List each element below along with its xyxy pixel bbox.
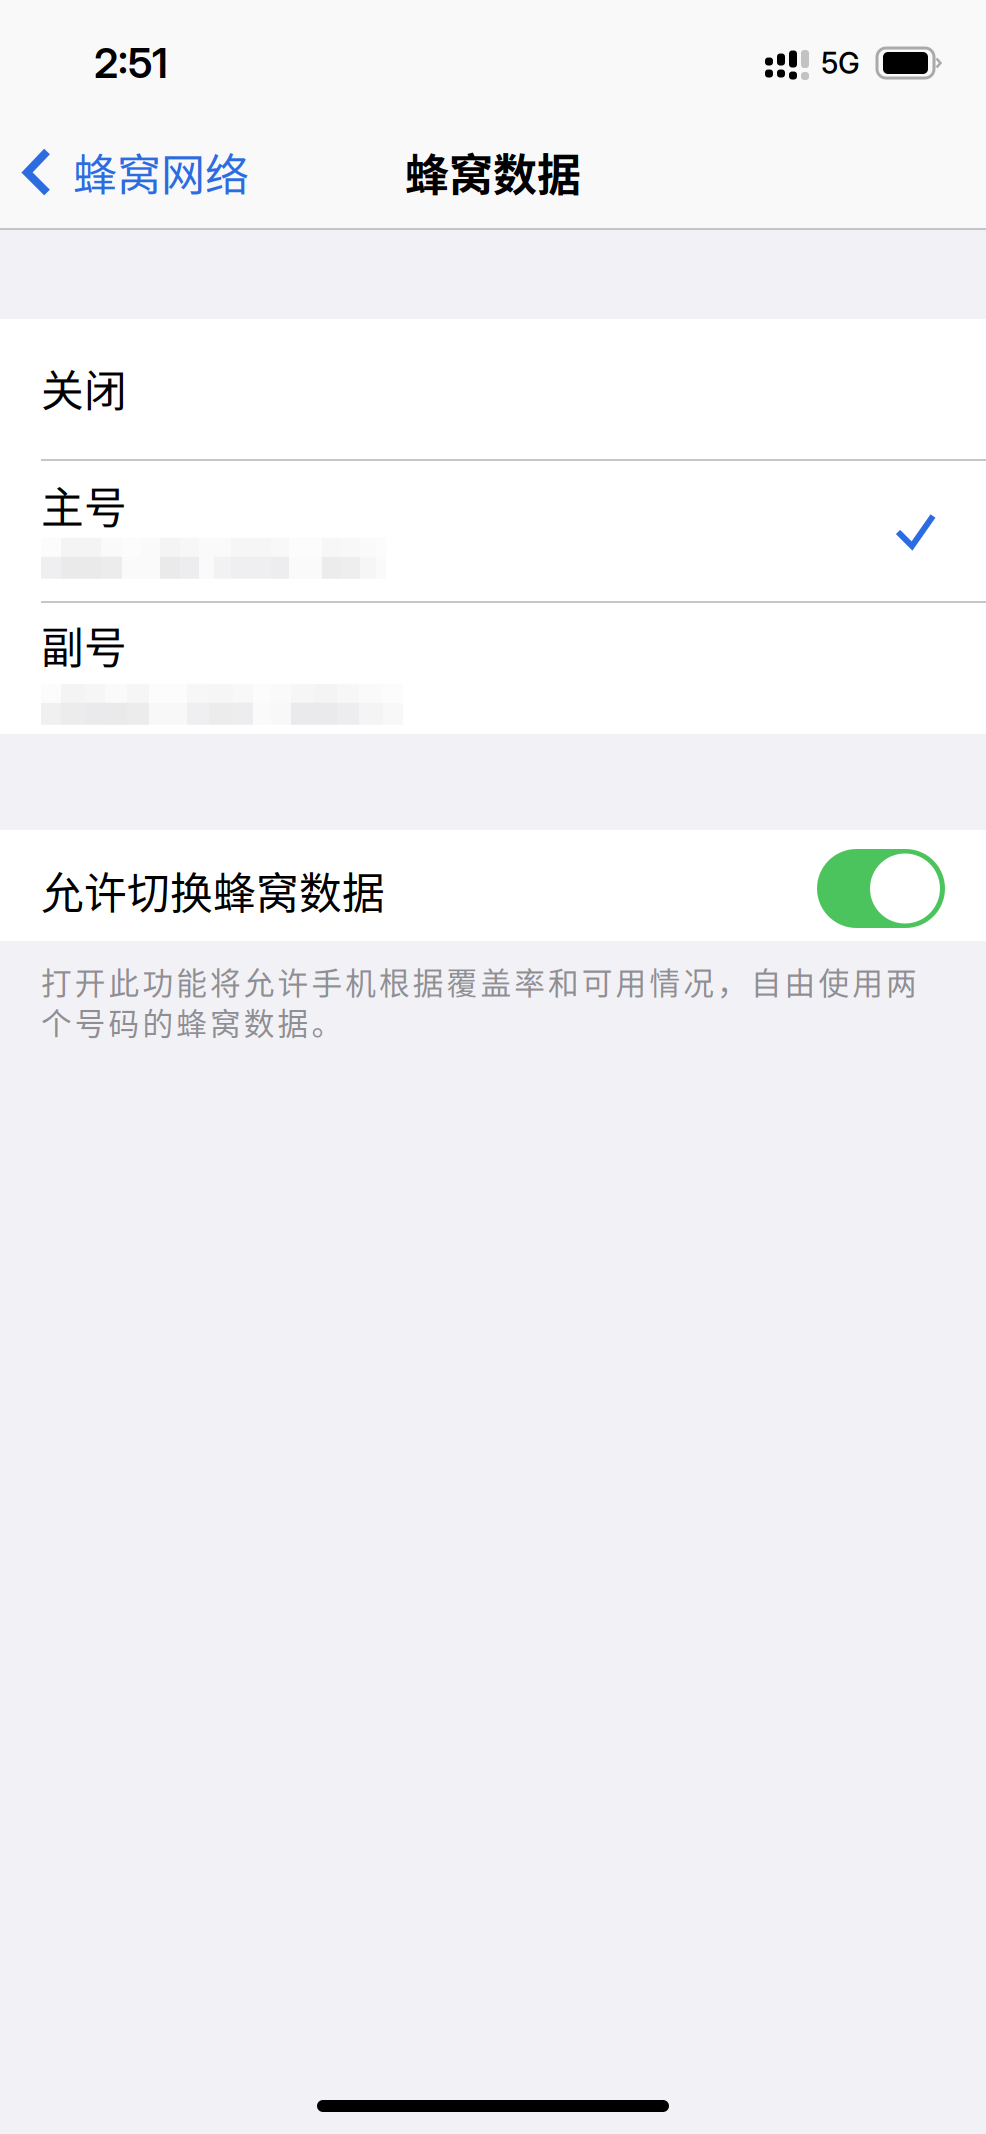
staticText: 5G [821,45,860,81]
staticText: 副号 [41,614,127,676]
button[interactable]: 允许切换蜂窝数据 [0,830,986,941]
button[interactable]: 关闭 [0,319,986,459]
staticText: 允许切换蜂窝数据 [41,860,385,921]
staticText: 蜂窝网络 [73,140,249,204]
button[interactable]: 主号 [0,461,986,601]
staticText: 主号 [41,474,127,536]
staticText: 打开此功能将允许手机根据覆盖率和可用情况，自由使用两个号码的蜂窝数据。 [41,959,917,1044]
staticText: 蜂窝数据 [405,140,581,204]
staticText: 2:51 [94,38,168,88]
button[interactable]: 副号 [0,603,986,734]
staticText: 关闭 [41,357,127,419]
button[interactable]: 蜂窝网络 [0,116,269,228]
